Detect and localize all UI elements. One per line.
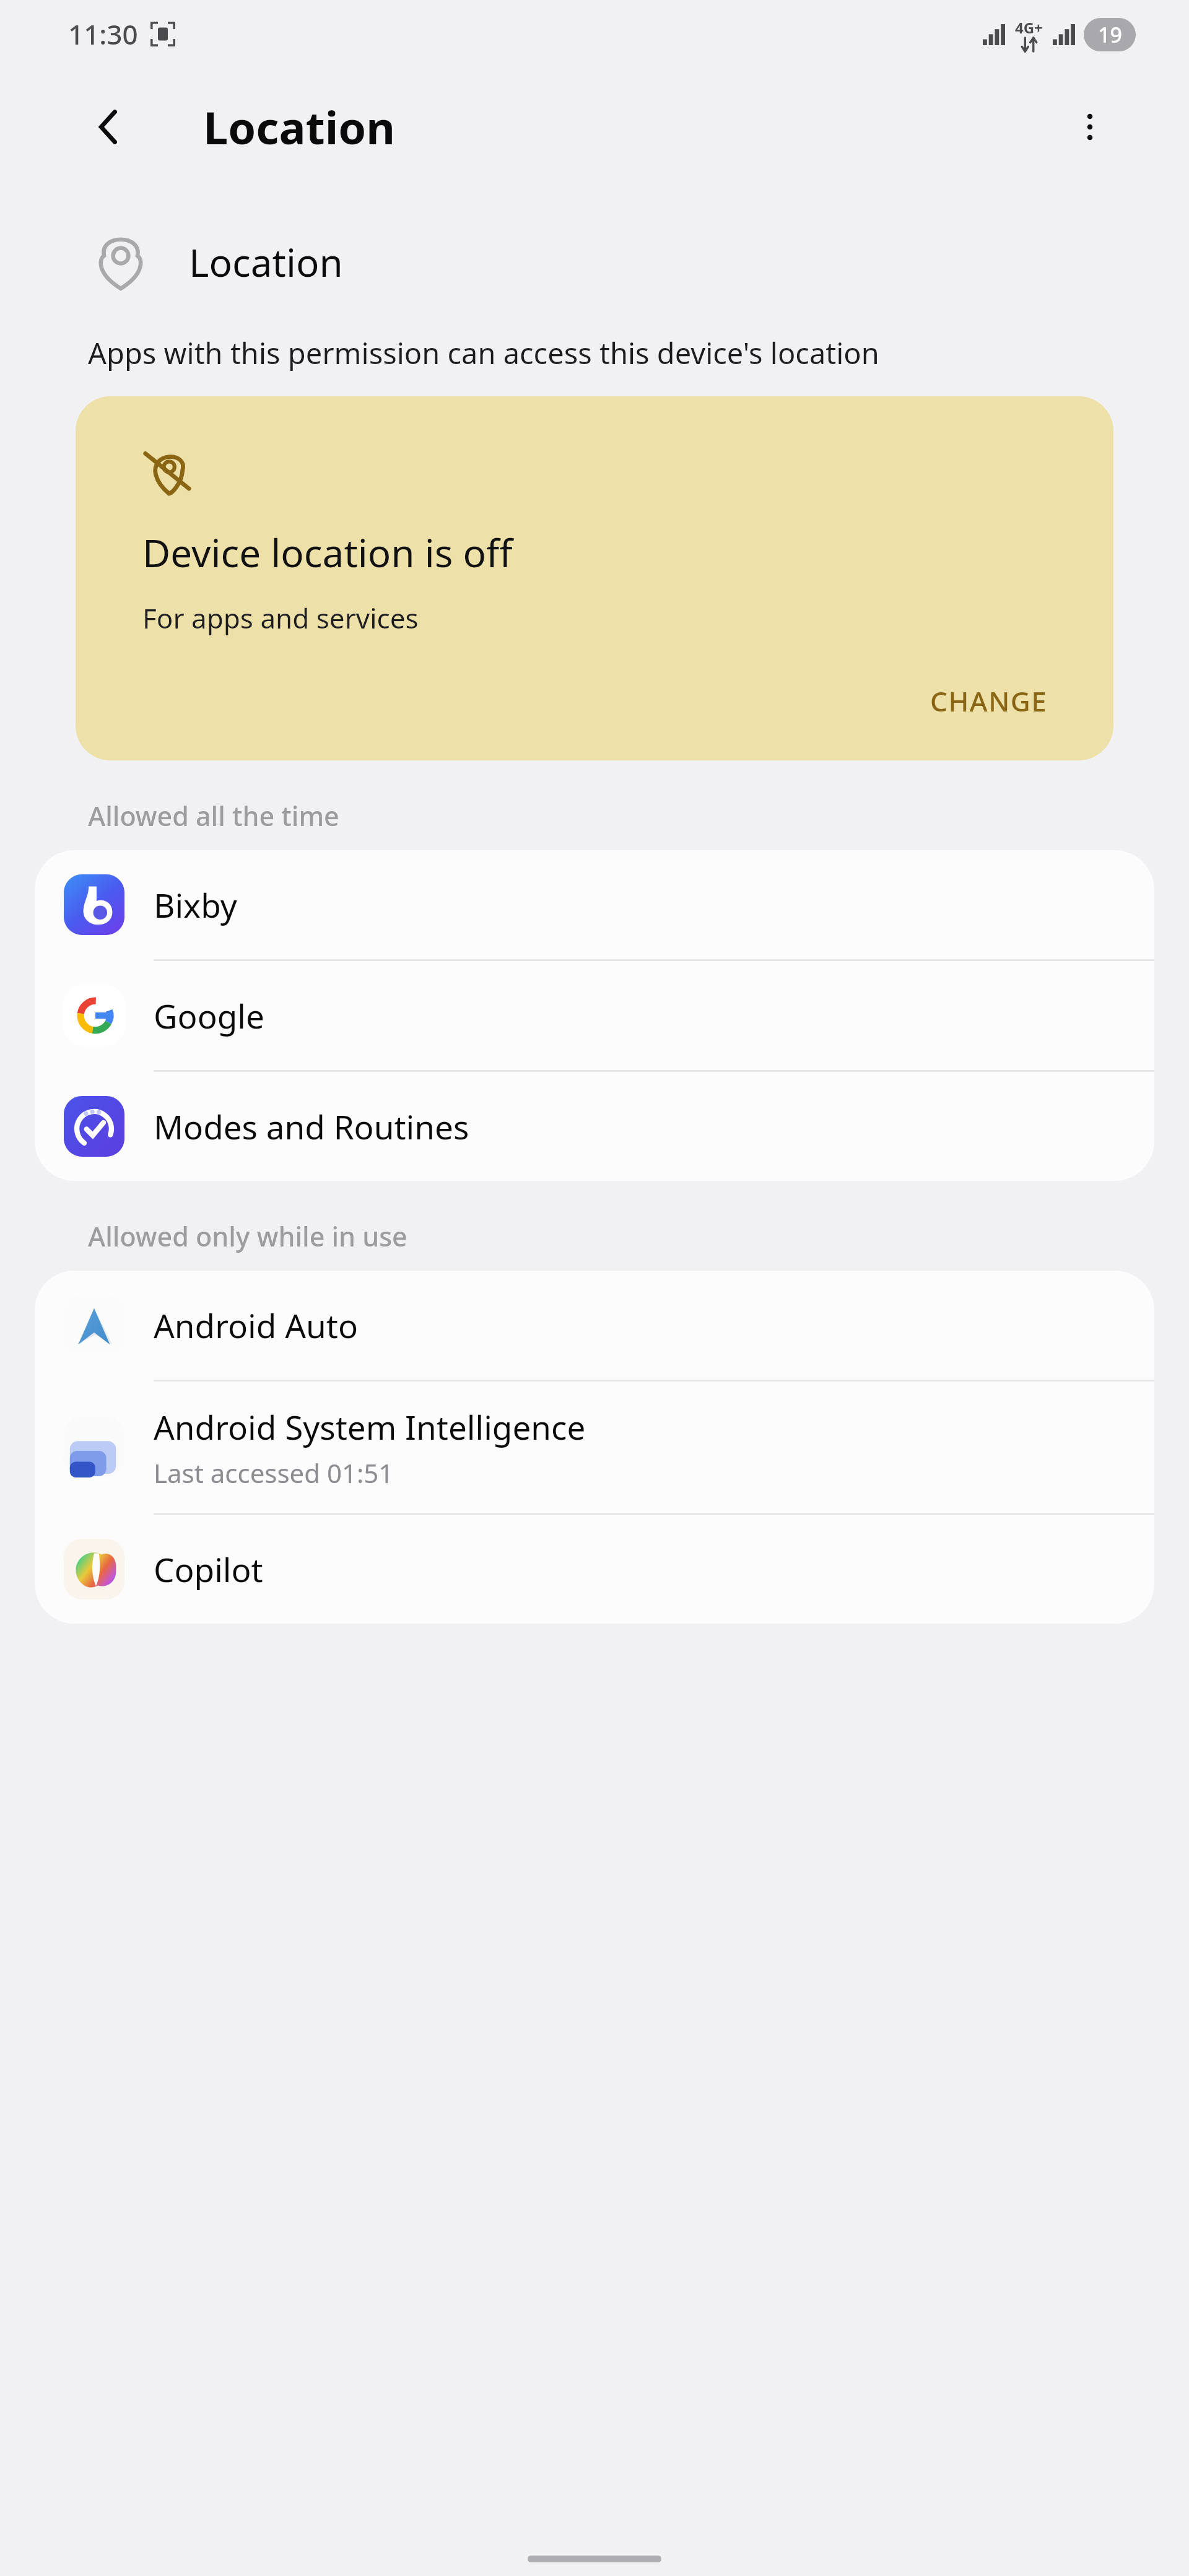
staticText: Android System Intelligence (154, 1404, 586, 1449)
staticText: Apps with this permission can access thi… (88, 333, 879, 373)
staticText: CHANGE (930, 682, 1048, 720)
staticText: Allowed only while in use (88, 1218, 407, 1255)
button[interactable]: More options (1059, 96, 1121, 158)
button[interactable]: Android Auto (35, 1271, 1154, 1380)
button[interactable]: CHANGE (919, 675, 1059, 727)
staticText: Bixby (154, 882, 237, 927)
button[interactable]: Copilot (35, 1515, 1154, 1624)
staticText: Modes and Routines (154, 1104, 469, 1149)
button[interactable]: Android System Intelligence (35, 1382, 1154, 1513)
staticText: Location (203, 97, 396, 157)
button[interactable]: Bixby (35, 850, 1154, 959)
staticText: 19 (1098, 20, 1122, 49)
staticText: Google (154, 993, 264, 1038)
staticText: Location (189, 236, 343, 288)
button[interactable]: Modes and Routines (35, 1072, 1154, 1181)
button[interactable]: Device location is off (76, 396, 1113, 760)
staticText: Last accessed 01:51 (154, 1455, 394, 1490)
staticText: Allowed all the time (88, 798, 339, 834)
staticText: 4G+ (1015, 17, 1043, 38)
staticText: 11:30 (68, 15, 138, 53)
staticText: Android Auto (154, 1303, 358, 1347)
button[interactable]: Back (74, 93, 142, 161)
staticText: Copilot (154, 1547, 263, 1591)
button[interactable]: Google (35, 961, 1154, 1070)
staticText: For apps and services (142, 599, 419, 637)
staticText: Device location is off (142, 526, 513, 578)
